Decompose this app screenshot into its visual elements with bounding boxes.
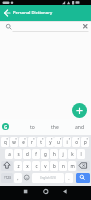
button[interactable]: [57, 186, 73, 198]
staticText: k: [71, 151, 74, 157]
button[interactable]: [76, 173, 90, 183]
button[interactable]: [16, 186, 32, 198]
button[interactable]: h: [50, 149, 58, 159]
button[interactable]: f: [32, 149, 40, 159]
staticText: m: [70, 163, 75, 169]
button[interactable]: e: [19, 137, 27, 147]
button[interactable]: English (US): [32, 173, 64, 183]
button[interactable]: [38, 186, 54, 198]
staticText: q: [4, 139, 7, 145]
staticText: e: [22, 139, 25, 145]
button[interactable]: to: [22, 119, 42, 135]
staticText: the: [51, 124, 59, 131]
staticText: .: [68, 175, 70, 182]
button[interactable]: G: [2, 123, 9, 130]
staticText: English (US): [40, 176, 56, 180]
button[interactable]: ,: [14, 173, 22, 183]
button[interactable]: v: [41, 161, 49, 171]
button[interactable]: k: [68, 149, 76, 159]
staticText: o: [75, 139, 78, 145]
staticText: x: [26, 163, 29, 169]
button[interactable]: [1, 161, 13, 171]
staticText: d: [26, 151, 29, 157]
button[interactable]: c: [32, 161, 40, 171]
button[interactable]: ?123: [1, 173, 13, 183]
staticText: Personal Dictionary: [13, 10, 53, 16]
staticText: g: [44, 151, 47, 157]
staticText: s: [17, 151, 20, 157]
button[interactable]: s: [14, 149, 22, 159]
button[interactable]: [1, 7, 13, 19]
staticText: to: [30, 124, 35, 131]
staticText: b: [53, 163, 56, 169]
staticText: u: [57, 139, 60, 145]
button[interactable]: x: [23, 161, 31, 171]
button[interactable]: [77, 161, 90, 171]
button[interactable]: d: [23, 149, 31, 159]
button[interactable]: z: [14, 161, 22, 171]
staticText: y: [49, 139, 52, 145]
staticText: and: [75, 124, 84, 131]
button[interactable]: .: [65, 173, 73, 183]
button[interactable]: [72, 103, 87, 118]
staticText: c: [35, 163, 38, 169]
staticText: i: [66, 139, 68, 145]
staticText: ,: [17, 175, 19, 182]
button[interactable]: the: [45, 119, 65, 135]
staticText: a: [8, 151, 11, 157]
staticText: n: [62, 163, 65, 169]
staticText: t: [40, 139, 42, 145]
button[interactable]: [80, 21, 90, 31]
button[interactable]: m: [68, 161, 76, 171]
button[interactable]: o: [72, 137, 80, 147]
staticText: l: [80, 151, 82, 157]
button[interactable]: [23, 173, 31, 183]
button[interactable]: a: [5, 149, 13, 159]
staticText: ?123: [4, 176, 11, 180]
button[interactable]: y: [46, 137, 54, 147]
button[interactable]: b: [50, 161, 58, 171]
staticText: r: [31, 139, 33, 145]
button[interactable]: w: [10, 137, 18, 147]
button[interactable]: i: [63, 137, 71, 147]
button[interactable]: l: [77, 149, 85, 159]
button[interactable]: g: [41, 149, 49, 159]
staticText: z: [17, 163, 20, 169]
button[interactable]: q: [1, 137, 9, 147]
staticText: j: [62, 151, 64, 157]
button[interactable]: n: [59, 161, 67, 171]
staticText: w: [12, 139, 16, 145]
button[interactable]: r: [28, 137, 36, 147]
staticText: G: [4, 124, 8, 130]
staticText: v: [44, 163, 47, 169]
staticText: f: [35, 151, 37, 157]
staticText: h: [53, 151, 56, 157]
button[interactable]: j: [59, 149, 67, 159]
staticText: p: [84, 139, 87, 145]
button[interactable]: u: [54, 137, 62, 147]
button[interactable]: t: [37, 137, 45, 147]
button[interactable]: and: [69, 119, 90, 135]
button[interactable]: p: [81, 137, 89, 147]
